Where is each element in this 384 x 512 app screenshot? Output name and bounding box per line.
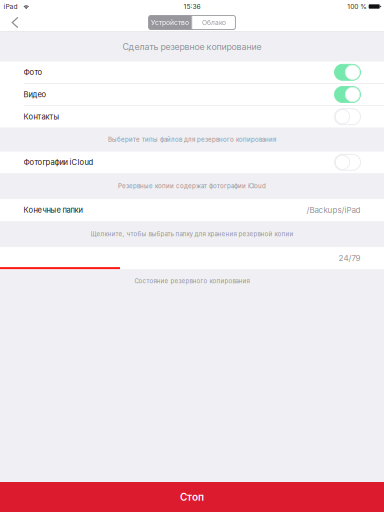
- staticText: Видео: [23, 90, 46, 99]
- staticText: 100 %: [347, 2, 367, 11]
- button[interactable]: Контакты: [0, 106, 384, 127]
- button[interactable]: Фото: [0, 61, 384, 83]
- staticText: 15:36: [183, 2, 200, 11]
- staticText: Устройство: [151, 18, 189, 27]
- staticText: 24/79: [338, 253, 360, 263]
- staticText: Фото: [23, 68, 42, 77]
- staticText: /Backups/iPad: [306, 205, 360, 215]
- staticText: Облако: [202, 18, 226, 27]
- button[interactable]: Облако: [192, 15, 235, 29]
- staticText: Конечные папки: [23, 205, 82, 215]
- staticText: Контакты: [23, 112, 59, 121]
- button[interactable]: Back: [0, 13, 30, 32]
- button[interactable]: Видео: [0, 84, 384, 105]
- staticText: Сделать резервное копирование: [122, 41, 261, 52]
- button[interactable]: Фотографии iCloud: [0, 151, 384, 173]
- staticText: Состояние резервного копирования: [134, 277, 249, 285]
- button[interactable]: Стоп: [0, 482, 384, 512]
- staticText: Резервные копии содержат фотографии iClo…: [118, 182, 266, 190]
- button[interactable]: Устройство: [149, 15, 192, 29]
- staticText: Фотографии iCloud: [23, 158, 93, 167]
- staticText: Стоп: [180, 491, 204, 503]
- button[interactable]: Конечные папки: [0, 199, 384, 221]
- staticText: Щелкните, чтобы выбрать папку для хранен…: [90, 230, 293, 238]
- staticText: Выберите типы файлов для резервного копи…: [108, 136, 276, 143]
- staticText: iPad: [3, 2, 17, 11]
